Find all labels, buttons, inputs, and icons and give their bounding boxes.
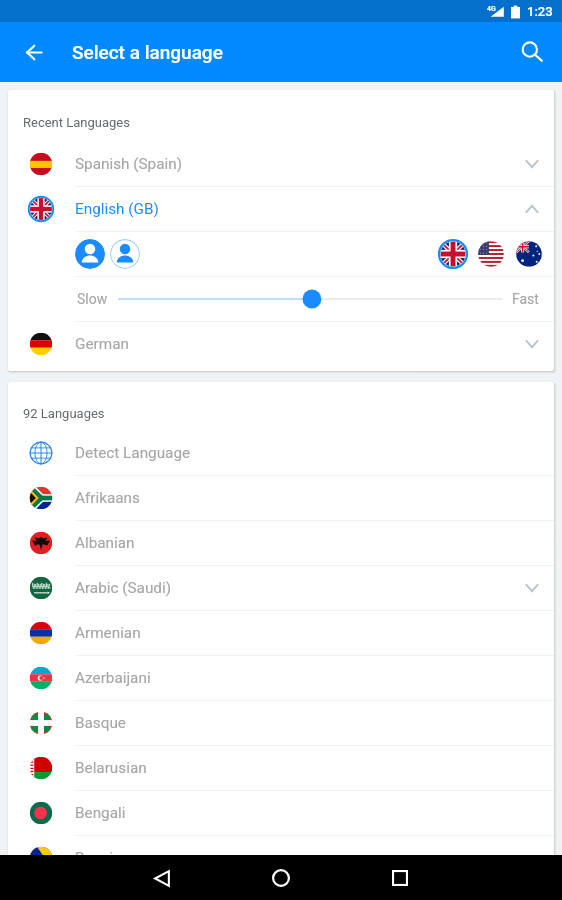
staticText: English (GB) xyxy=(75,200,159,218)
button[interactable]: Search xyxy=(508,28,556,76)
staticText: Fast xyxy=(512,291,539,307)
button[interactable]: English (GB) xyxy=(8,187,554,231)
staticText: Recent Languages xyxy=(23,115,130,130)
button[interactable]: Basque xyxy=(8,701,554,745)
button[interactable]: German xyxy=(8,322,554,366)
button[interactable]: Spanish (Spain) xyxy=(8,142,554,186)
staticText: 92 Languages xyxy=(23,406,105,421)
staticText: 1:23 xyxy=(527,4,553,19)
button[interactable]: Recent apps xyxy=(378,856,422,900)
button[interactable]: Armenian xyxy=(8,611,554,655)
button[interactable]: US accent xyxy=(475,238,507,270)
button[interactable]: Bosnian xyxy=(8,836,554,880)
button[interactable]: Belarusian xyxy=(8,746,554,790)
button[interactable]: Arabic (Saudi) xyxy=(8,566,554,610)
button[interactable]: Detect Language xyxy=(8,431,554,475)
button[interactable]: Male voice xyxy=(75,239,105,269)
staticText: Azerbaijani xyxy=(75,669,151,687)
button[interactable] xyxy=(118,284,502,314)
button[interactable]: Bengali xyxy=(8,791,554,835)
button[interactable]: Female voice xyxy=(110,239,140,269)
button[interactable]: Albanian xyxy=(8,521,554,565)
button[interactable]: Afrikaans xyxy=(8,476,554,520)
staticText: Select a language xyxy=(72,41,223,63)
button[interactable]: Navigate back xyxy=(10,28,58,76)
staticText: Armenian xyxy=(75,624,141,642)
staticText: German xyxy=(75,335,129,353)
staticText: 4G xyxy=(487,5,496,13)
staticText: Bosnian xyxy=(75,849,131,867)
staticText: Slow xyxy=(77,291,108,307)
button[interactable]: Azerbaijani xyxy=(8,656,554,700)
button[interactable]: Back xyxy=(140,856,184,900)
button[interactable]: UK accent xyxy=(437,238,469,270)
staticText: Spanish (Spain) xyxy=(75,155,182,173)
staticText: Bengali xyxy=(75,804,126,822)
button[interactable]: Australian accent xyxy=(513,238,545,270)
button[interactable]: Bulgarian xyxy=(8,881,554,900)
staticText: Afrikaans xyxy=(75,489,140,507)
staticText: Albanian xyxy=(75,534,135,552)
staticText: Belarusian xyxy=(75,759,147,777)
staticText: Arabic (Saudi) xyxy=(75,579,172,597)
staticText: Basque xyxy=(75,714,126,732)
button[interactable]: Home xyxy=(259,856,303,900)
staticText: Detect Language xyxy=(75,444,191,462)
